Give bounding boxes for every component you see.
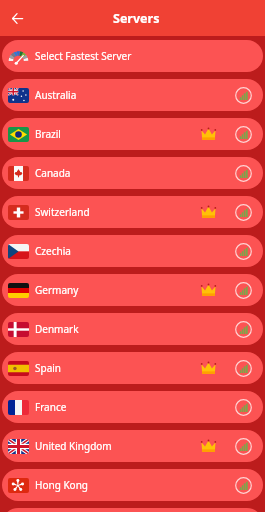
staticText: Spain	[35, 361, 62, 375]
button[interactable]: Spain	[2, 352, 263, 384]
staticText: Hong Kong	[35, 478, 88, 492]
staticText: Australia	[35, 88, 77, 102]
button[interactable]: United Kingdom	[2, 430, 263, 462]
staticText: Germany	[35, 283, 79, 297]
staticText: Czechia	[35, 244, 71, 258]
button[interactable]: Germany	[2, 274, 263, 306]
staticText: Brazil	[35, 127, 61, 141]
staticText: Denmark	[35, 322, 79, 336]
button[interactable]: Denmark	[2, 313, 263, 345]
staticText: Canada	[35, 166, 71, 180]
button[interactable]: Brazil	[2, 118, 263, 150]
button[interactable]: France	[2, 391, 263, 423]
button[interactable]: Select Fastest Server	[2, 40, 263, 72]
staticText: Switzerland	[35, 205, 90, 219]
button[interactable]: Hong Kong	[2, 469, 263, 501]
button[interactable]: Australia	[2, 79, 263, 111]
button[interactable]: Canada	[2, 157, 263, 189]
staticText: France	[35, 400, 67, 414]
button[interactable]: Back	[4, 5, 30, 31]
button[interactable]: Czechia	[2, 235, 263, 267]
staticText: Servers	[113, 10, 160, 27]
staticText: Select Fastest Server	[35, 49, 132, 63]
button[interactable]: Switzerland	[2, 196, 263, 228]
staticText: United Kingdom	[35, 439, 112, 453]
button[interactable]: Croatia	[2, 508, 263, 512]
